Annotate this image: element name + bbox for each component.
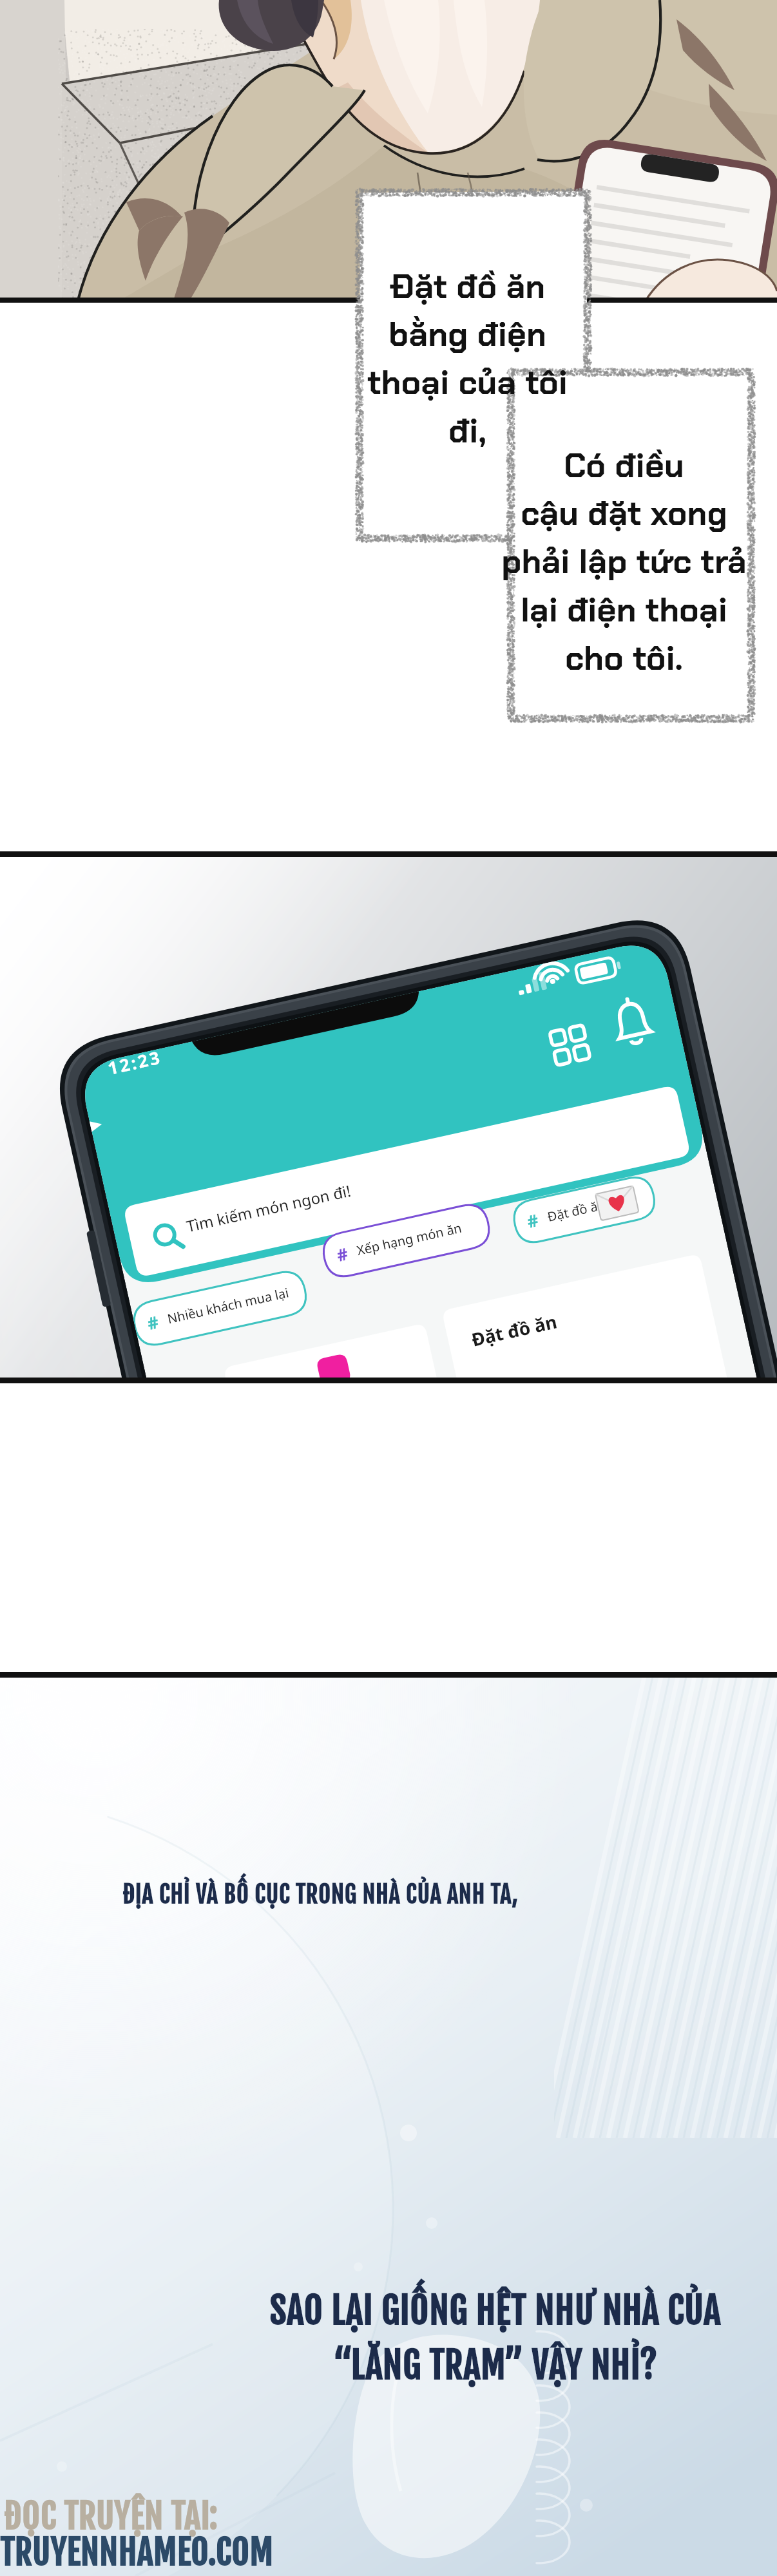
button[interactable] (0, 0, 777, 2576)
